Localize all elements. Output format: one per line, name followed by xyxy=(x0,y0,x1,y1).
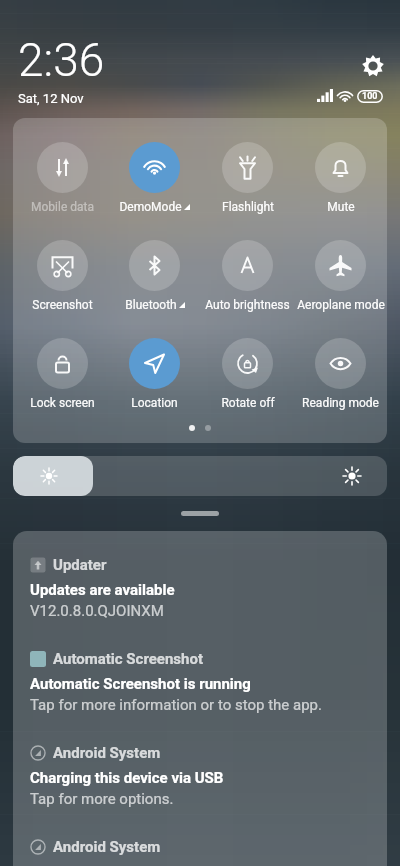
staticText: Aeroplane mode xyxy=(297,298,385,312)
staticText: Android System xyxy=(53,744,161,762)
staticText: Flashlight xyxy=(222,200,274,214)
staticText: DemoMode xyxy=(119,200,182,214)
button[interactable]: Settings xyxy=(362,55,384,77)
button[interactable]: Rotate off xyxy=(201,338,294,410)
button[interactable]: Bluetooth xyxy=(108,240,201,312)
button[interactable]: Mute xyxy=(294,142,387,214)
staticText: Tap for more information or to stop the … xyxy=(30,696,322,714)
button[interactable]: Lock screen xyxy=(16,338,108,410)
staticText: Auto brightness xyxy=(205,298,290,312)
staticText: Bluetooth xyxy=(125,298,177,312)
button[interactable]: Auto brightness xyxy=(201,240,294,312)
staticText: Mute xyxy=(327,200,355,214)
button[interactable]: Aeroplane mode xyxy=(294,240,387,312)
staticText: Automatic Screenshot xyxy=(53,650,204,668)
staticText: Lock screen xyxy=(30,396,95,410)
staticText: Reading mode xyxy=(302,396,379,410)
staticText: 2:36 xyxy=(18,33,105,87)
button[interactable]: Mobile data xyxy=(16,142,108,214)
button[interactable]: Android System xyxy=(13,813,387,866)
button[interactable]: Brightness xyxy=(13,456,387,496)
staticText: Updates are available xyxy=(30,581,175,599)
button[interactable]: Screenshot xyxy=(16,240,108,312)
staticText: Mobile data xyxy=(31,200,94,214)
staticText: Screenshot xyxy=(32,298,93,312)
staticText: 100 xyxy=(362,91,378,102)
button[interactable]: Automatic Screenshot xyxy=(13,625,387,719)
staticText: Automatic Screenshot is running xyxy=(30,675,251,693)
staticText: V12.0.8.0.QJOINXM xyxy=(30,602,164,620)
button[interactable]: DemoMode xyxy=(108,142,201,214)
staticText: Sat, 12 Nov xyxy=(18,91,84,106)
staticText: Updater xyxy=(53,556,107,574)
staticText: Location xyxy=(131,396,178,410)
button[interactable]: Reading mode xyxy=(294,338,387,410)
staticText: Charging this device via USB xyxy=(30,769,224,787)
button[interactable]: Flashlight xyxy=(201,142,294,214)
button[interactable]: Location xyxy=(108,338,201,410)
staticText: Rotate off xyxy=(221,396,275,410)
button[interactable]: Android System xyxy=(13,719,387,813)
staticText: Tap for more options. xyxy=(30,790,174,808)
staticText: Android System xyxy=(53,838,161,856)
button[interactable]: Updater xyxy=(13,531,387,625)
